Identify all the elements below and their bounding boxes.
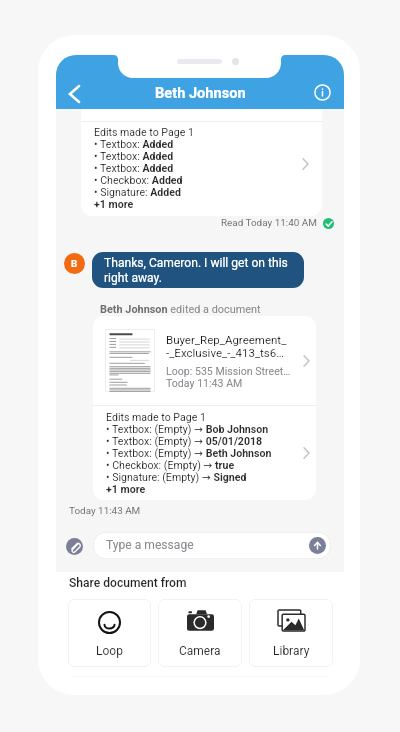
button[interactable]: Attach file — [66, 538, 83, 555]
staticText: Edits made to Page 1 — [94, 126, 194, 138]
staticText: Thanks, Cameron. I will get on this righ… — [104, 256, 294, 285]
button[interactable]: Buyer_Rep_Agreement_ — [93, 316, 316, 405]
staticText: • Textbox: (Empty) → 05/01/2018 — [106, 435, 263, 447]
button[interactable]: Send message — [309, 537, 326, 554]
button[interactable]: Thanks, Cameron. I will get on this righ… — [92, 252, 304, 288]
staticText: • Signature: (Empty) → Signed — [106, 471, 247, 483]
staticText: • Signature: Added — [94, 186, 181, 198]
button[interactable]: Library — [249, 599, 333, 667]
staticText: • Textbox: (Empty) → Bob Johnson — [106, 423, 269, 435]
staticText: Beth Johnson edited a document — [100, 303, 261, 316]
button[interactable]: Conversation info — [308, 78, 336, 106]
button[interactable]: Camera — [158, 599, 242, 667]
staticText: • Textbox: (Empty) → Beth Johnson — [106, 447, 272, 459]
button[interactable]: Type a message — [93, 532, 331, 559]
button[interactable]: Edits made to Page 1 — [81, 109, 322, 216]
staticText: • Textbox: Added — [94, 138, 174, 150]
staticText: Today 11:43 AM — [166, 377, 243, 389]
staticText: -_Exclusive_-_413_ts6… — [166, 346, 284, 359]
staticText: • Checkbox: (Empty) → true — [106, 459, 235, 471]
staticText: +1 more — [94, 198, 134, 210]
button[interactable]: Back — [59, 79, 89, 109]
staticText: Beth Johnson — [155, 84, 246, 101]
staticText: • Checkbox: Added — [94, 174, 183, 186]
staticText: Read Today 11:40 AM — [221, 217, 317, 229]
staticText: Loop — [96, 644, 123, 658]
staticText: • Textbox: Added — [94, 150, 174, 162]
staticText: Today 11:43 AM — [69, 505, 141, 517]
staticText: Library — [273, 644, 310, 658]
staticText: Edits made to Page 1 — [106, 411, 206, 423]
staticText: Camera — [179, 644, 221, 658]
button[interactable]: Edits made to Page 1 — [93, 405, 316, 500]
staticText: Type a message — [106, 538, 194, 552]
staticText: Share document from — [69, 576, 187, 590]
staticText: Buyer_Rep_Agreement_ — [166, 333, 287, 346]
button[interactable]: Loop — [68, 599, 151, 667]
staticText: B — [71, 258, 78, 269]
staticText: +1 more — [106, 483, 146, 495]
staticText: Loop: 535 Mission Street… — [166, 365, 291, 377]
staticText: • Textbox: Added — [94, 162, 174, 174]
